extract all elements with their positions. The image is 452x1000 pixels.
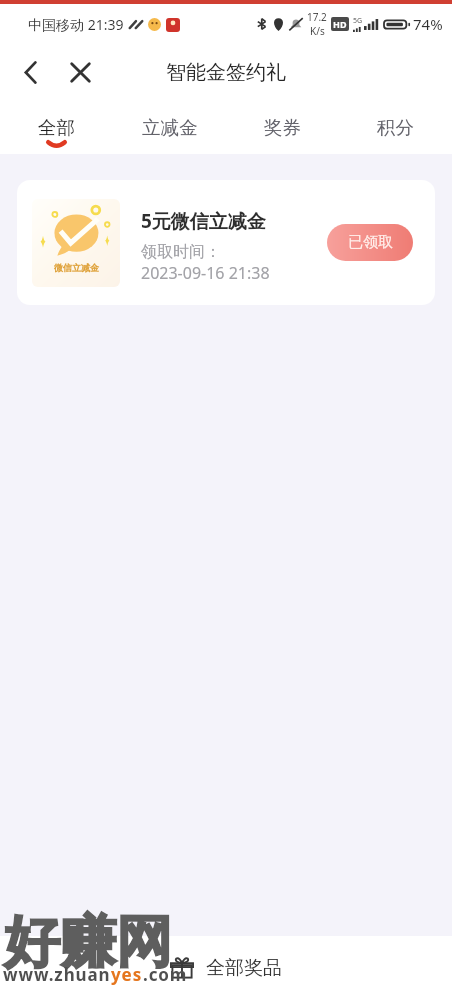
staticText: 已领取 [348,233,393,252]
staticText: 领取时间： [141,242,221,262]
button[interactable]: 已领取 [327,224,413,261]
button[interactable]: 立减金 [113,100,226,154]
button[interactable]: 微信立减金 [17,180,435,305]
staticText: 智能金签约礼 [166,60,286,85]
staticText: 积分 [377,116,414,139]
staticText: 微信立减金 [54,262,99,273]
staticText: 立减金 [142,116,198,139]
staticText: 5元微信立减金 [141,208,266,234]
staticText: 好赚网 [4,907,172,978]
staticText: www.zhuan [3,963,111,986]
button[interactable]: 奖券 [226,100,339,154]
button[interactable]: 全部 [0,100,113,154]
staticText: 全部奖品 [206,956,282,980]
button[interactable]: 全部奖品 [0,936,452,1000]
staticText: yes [111,963,143,986]
staticText: 17.2 [307,10,327,24]
staticText: 中国移动 21:39 [28,15,124,34]
staticText: 5G [353,16,363,26]
button[interactable]: 积分 [339,100,452,154]
staticText: 奖券 [264,116,301,139]
staticText: 74% [413,14,443,34]
staticText: HD [333,18,347,30]
button[interactable]: Back [10,52,50,92]
staticText: .com [143,963,188,986]
staticText: 全部 [38,116,75,139]
button[interactable]: Close [60,52,100,92]
staticText: 2023-09-16 21:38 [141,262,270,284]
staticText: K/s [310,24,325,38]
